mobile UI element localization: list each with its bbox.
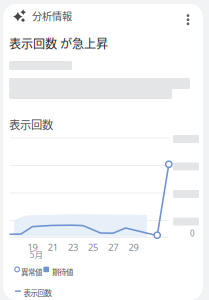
- staticText: 表示回数 が急上昇: [9, 34, 108, 52]
- staticText: 27: [108, 241, 118, 253]
- staticText: 29: [128, 241, 138, 253]
- staticText: 19: [27, 241, 37, 253]
- staticText: 23: [68, 241, 78, 253]
- staticText: 期待値: [52, 267, 73, 277]
- staticText: 表示回数: [23, 287, 51, 298]
- staticText: 0: [190, 228, 195, 239]
- button[interactable]: 分析情報: [13, 5, 72, 26]
- staticText: 分析情報: [32, 8, 72, 23]
- staticText: 5月: [30, 248, 43, 260]
- button[interactable]: More options: [177, 9, 199, 31]
- staticText: 表示回数: [9, 116, 53, 132]
- staticText: 異常値: [21, 267, 42, 277]
- staticText: 21: [48, 241, 58, 253]
- staticText: 25: [88, 241, 98, 253]
